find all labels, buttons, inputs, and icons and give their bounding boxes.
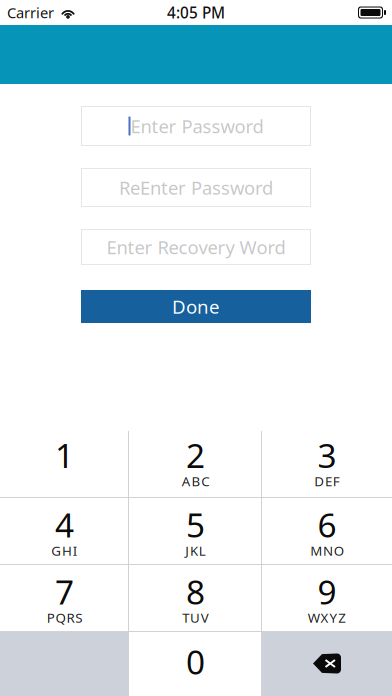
staticText: WXYZ: [308, 609, 346, 626]
button[interactable]: Enter Password: [81, 106, 311, 146]
staticText: Done: [172, 294, 220, 319]
button[interactable]: Done: [81, 290, 311, 323]
staticText: 8: [186, 569, 205, 614]
staticText: DEF: [314, 472, 340, 490]
button[interactable]: 5: [129, 497, 262, 564]
staticText: 3: [317, 433, 336, 477]
button[interactable]: 6: [262, 497, 392, 564]
button[interactable]: 0: [129, 631, 262, 696]
staticText: 5: [186, 502, 205, 547]
staticText: 4:05 PM: [167, 2, 225, 23]
staticText: Enter Password: [130, 113, 263, 139]
staticText: MNO: [310, 542, 344, 559]
staticText: 0: [186, 639, 205, 684]
staticText: PQRS: [47, 609, 82, 626]
staticText: 1: [55, 433, 74, 477]
staticText: TUV: [182, 609, 209, 626]
staticText: 4: [55, 502, 74, 547]
staticText: Enter Recovery Word: [106, 234, 285, 260]
button[interactable]: Delete: [262, 631, 392, 696]
staticText: ReEnter Password: [119, 175, 273, 200]
button[interactable]: Enter Recovery Word: [81, 229, 311, 265]
staticText: 2: [186, 433, 205, 477]
button[interactable]: 2: [129, 425, 262, 497]
staticText: GHI: [51, 542, 78, 559]
staticText: Carrier: [7, 2, 54, 22]
staticText: JKL: [185, 542, 206, 559]
button[interactable]: 3: [262, 425, 392, 497]
button[interactable]: 9: [262, 564, 392, 631]
button[interactable]: 1: [0, 425, 129, 497]
staticText: ABC: [182, 472, 209, 490]
button[interactable]: ReEnter Password: [81, 168, 311, 207]
button[interactable]: 4: [0, 497, 129, 564]
staticText: 9: [317, 569, 336, 614]
staticText: 7: [55, 569, 74, 614]
button[interactable]: 7: [0, 564, 129, 631]
button[interactable]: 8: [129, 564, 262, 631]
staticText: 6: [317, 502, 336, 547]
